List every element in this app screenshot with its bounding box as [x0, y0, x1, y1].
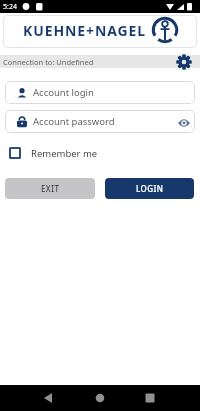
button[interactable]: Remember me	[9, 145, 98, 161]
staticText: Connection to: Undefined	[3, 57, 94, 67]
button[interactable]: Account password	[5, 110, 195, 133]
staticText: EXIT	[41, 183, 60, 194]
button[interactable]	[178, 119, 190, 127]
button[interactable]	[38, 389, 58, 407]
button[interactable]: LOGIN	[105, 178, 194, 199]
button[interactable]: EXIT	[5, 178, 95, 199]
staticText: KUEHNE+NAGEL	[23, 21, 147, 40]
button[interactable]	[140, 389, 160, 407]
button[interactable]	[176, 54, 192, 70]
button[interactable]	[90, 389, 110, 407]
staticText: Account login	[33, 86, 94, 99]
staticText: LOGIN	[136, 183, 164, 194]
staticText: Remember me	[31, 147, 98, 160]
button[interactable]: Account login	[5, 81, 195, 104]
staticText: Account password	[33, 115, 115, 128]
staticText: 5:24	[3, 2, 17, 12]
